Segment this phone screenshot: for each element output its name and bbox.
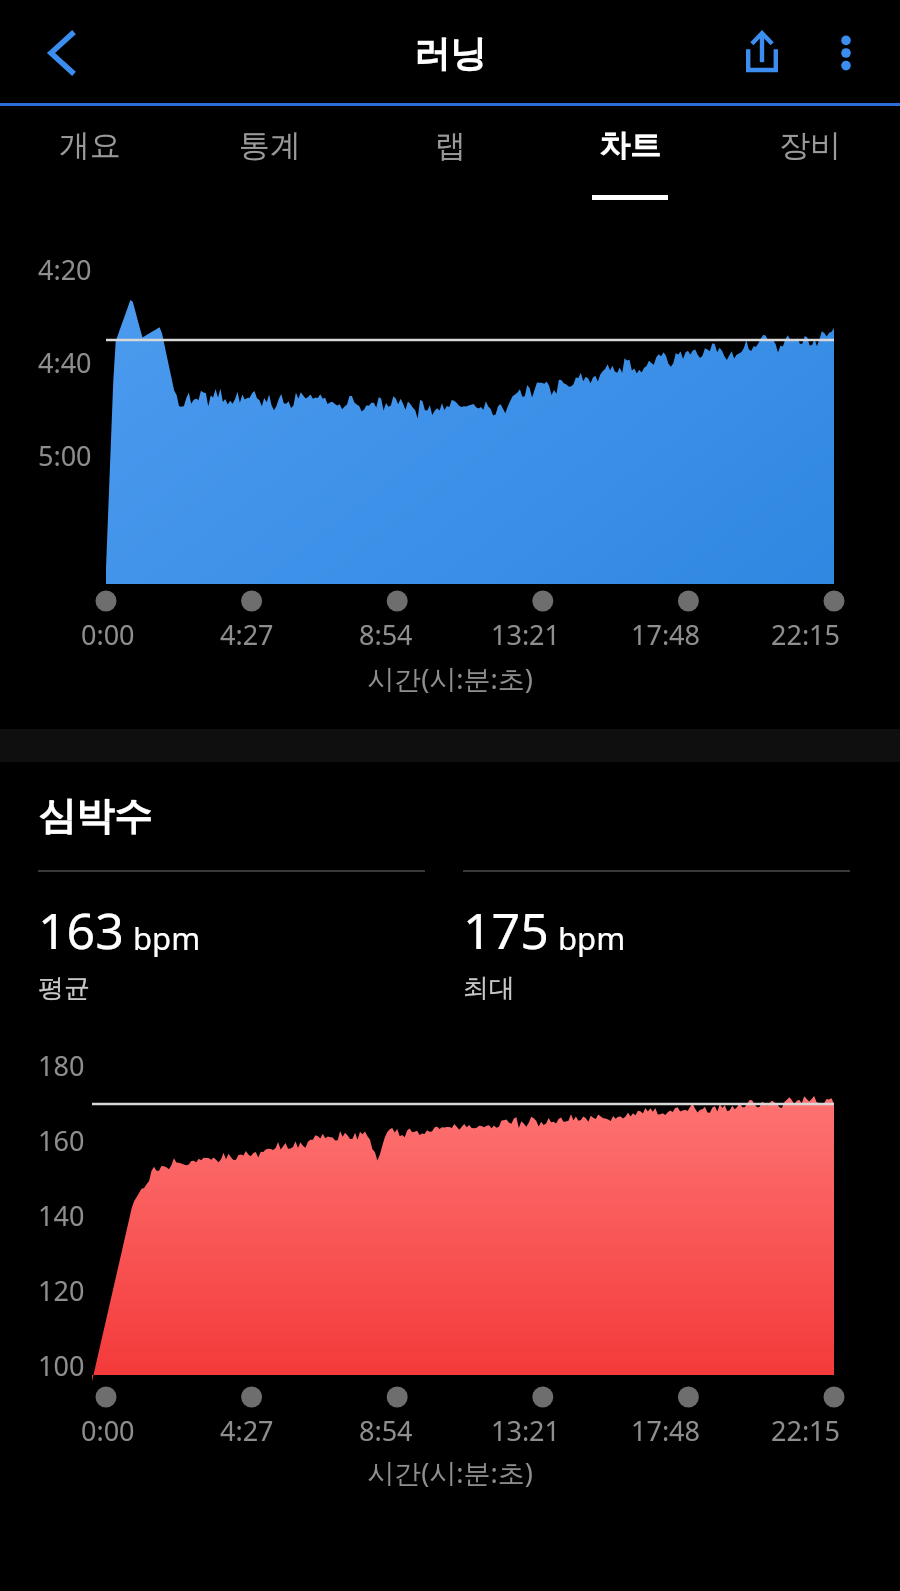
staticText: 22:15 [771,616,841,653]
staticText: bpm [558,917,626,959]
staticText: 랩 [435,126,466,165]
staticText: 러닝 [414,31,486,76]
staticText: 17:48 [631,616,701,653]
staticText: 163 [38,896,124,964]
staticText: 140 [38,1197,85,1234]
staticText: 160 [38,1122,85,1159]
staticText: 심박수 [38,792,152,840]
staticText: 시간(시:분:초) [0,1454,900,1491]
staticText: 장비 [779,126,841,165]
button[interactable]: 랩 [360,106,540,234]
button[interactable]: Share [718,9,806,97]
staticText: 4:40 [38,344,92,381]
staticText: 시간(시:분:초) [0,660,900,697]
staticText: 통계 [239,126,301,165]
button[interactable]: 175 [463,870,850,1005]
staticText: 4:27 [220,1412,274,1449]
button[interactable]: 통계 [180,106,360,234]
staticText: 175 [463,896,549,964]
staticText: 5:00 [38,437,92,474]
button[interactable]: 163 [38,870,425,1005]
staticText: 4:20 [38,251,92,288]
staticText: 180 [38,1047,85,1084]
staticText: 0:00 [81,1412,135,1449]
staticText: 평균 [38,972,90,1005]
staticText: bpm [133,917,201,959]
staticText: 100 [38,1347,85,1384]
staticText: 22:15 [771,1412,841,1449]
staticText: 17:48 [631,1412,701,1449]
staticText: 0:00 [81,616,135,653]
button[interactable]: 개요 [0,106,180,234]
button[interactable]: 차트 [540,106,720,234]
staticText: 8:54 [359,616,413,653]
staticText: 13:21 [491,1412,561,1449]
staticText: 120 [38,1272,85,1309]
button[interactable]: Back [20,11,104,95]
staticText: 4:27 [220,616,274,653]
staticText: 개요 [59,126,121,165]
staticText: 13:21 [491,616,561,653]
staticText: 차트 [599,126,661,165]
button[interactable]: More options [806,13,886,93]
button[interactable]: 장비 [720,106,900,234]
staticText: 8:54 [359,1412,413,1449]
staticText: 최대 [463,972,515,1005]
